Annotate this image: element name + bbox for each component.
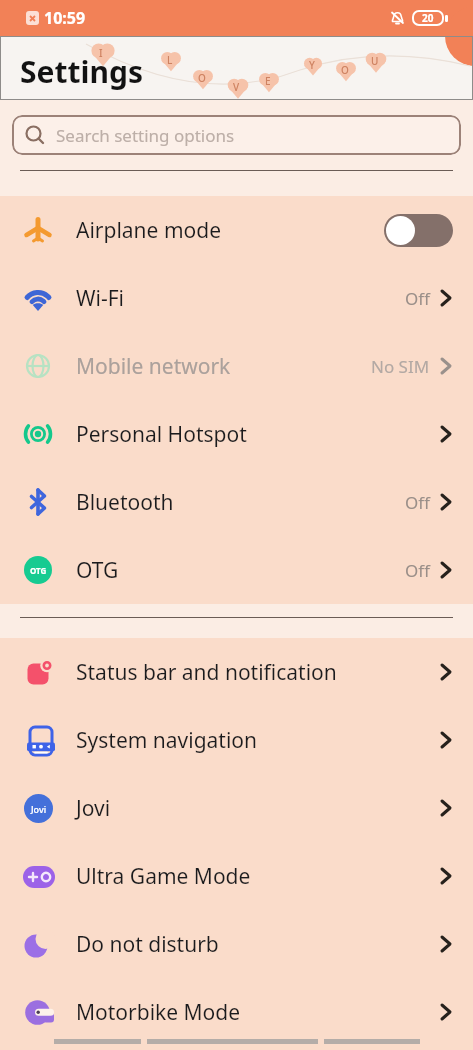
button[interactable]: Personal Hotspot [0, 400, 473, 468]
staticText: 10:59 [44, 7, 86, 29]
button[interactable]: Mobile network [0, 332, 473, 400]
button[interactable]: System navigation [0, 706, 473, 774]
staticText: OTG [76, 556, 405, 585]
staticText: Airplane mode [76, 216, 384, 245]
staticText: Status bar and notification [76, 658, 439, 687]
button[interactable]: Status bar and notification [0, 638, 473, 706]
staticText: E [265, 74, 271, 88]
button[interactable]: Airplane mode [0, 196, 473, 264]
button[interactable]: Ultra Game Mode [0, 842, 473, 910]
staticText: U [371, 54, 379, 68]
button[interactable]: Jovi [0, 774, 473, 842]
button[interactable]: Wi-Fi [0, 264, 473, 332]
staticText: Off [405, 287, 430, 310]
staticText: Settings [20, 51, 143, 92]
staticText: Personal Hotspot [76, 420, 439, 449]
staticText: Mobile network [76, 352, 371, 381]
staticText: Jovi [76, 794, 439, 823]
staticText: Motorbike Mode [76, 998, 439, 1027]
button[interactable]: Search setting options [12, 115, 461, 155]
staticText: Off [405, 559, 430, 582]
staticText: Ultra Game Mode [76, 862, 439, 891]
staticText: Search setting options [56, 124, 235, 147]
staticText: Wi-Fi [76, 284, 405, 313]
button[interactable]: Do not disturb [0, 910, 473, 978]
staticText: L [167, 53, 173, 67]
button[interactable] [384, 214, 453, 247]
staticText: OTG [30, 565, 47, 576]
staticText: Jovi [31, 803, 47, 815]
button[interactable]: OTG [0, 536, 473, 604]
staticText: Bluetooth [76, 488, 405, 517]
staticText: O [198, 71, 206, 85]
staticText: V [233, 80, 240, 94]
staticText: Y [309, 58, 315, 72]
staticText: System navigation [76, 726, 439, 755]
staticText: 20 [422, 11, 434, 25]
staticText: No SIM [371, 355, 430, 378]
button[interactable]: Bluetooth [0, 468, 473, 536]
staticText: Off [405, 491, 430, 514]
button[interactable]: Motorbike Mode [0, 978, 473, 1046]
staticText: O [341, 63, 349, 77]
staticText: Do not disturb [76, 930, 439, 959]
staticText: I [99, 46, 103, 60]
